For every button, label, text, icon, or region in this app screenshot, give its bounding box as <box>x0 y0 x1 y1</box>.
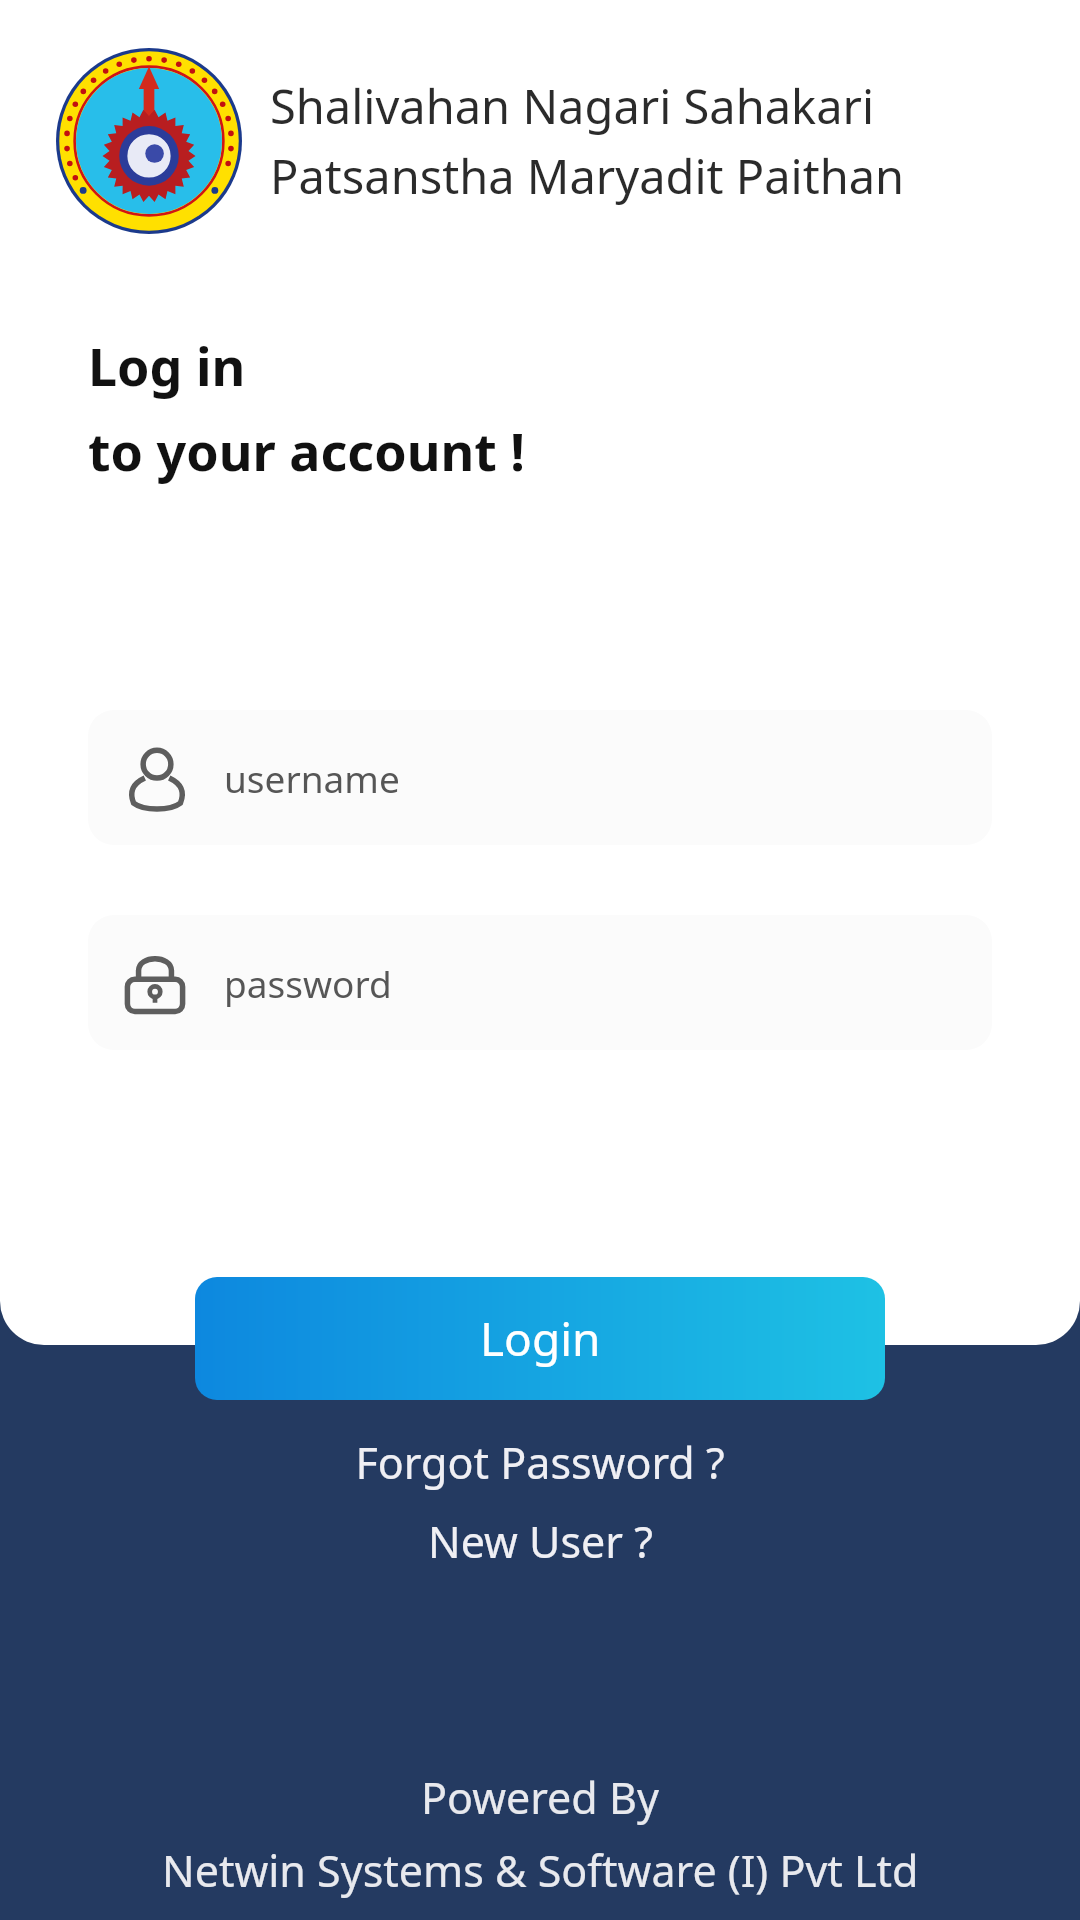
button[interactable]: password <box>88 915 992 1050</box>
staticText: to your account ! <box>88 415 526 486</box>
staticText: username <box>224 753 400 803</box>
staticText: Netwin Systems & Software (I) Pvt Ltd <box>162 1841 919 1900</box>
staticText: Patsanstha Maryadit Paithan <box>270 144 905 208</box>
staticText: Log in <box>88 330 246 401</box>
staticText: Login <box>480 1307 601 1370</box>
staticText: password <box>224 958 392 1008</box>
staticText: Shalivahan Nagari Sahakari <box>270 74 875 138</box>
button[interactable]: username <box>88 710 992 845</box>
staticText: New User ? <box>428 1512 653 1571</box>
staticText: Powered By <box>421 1768 659 1827</box>
button[interactable]: Forgot Password ? <box>335 1427 745 1498</box>
button[interactable]: New User ? <box>408 1506 673 1577</box>
button[interactable]: Login <box>195 1277 885 1400</box>
staticText: Forgot Password ? <box>355 1433 725 1492</box>
